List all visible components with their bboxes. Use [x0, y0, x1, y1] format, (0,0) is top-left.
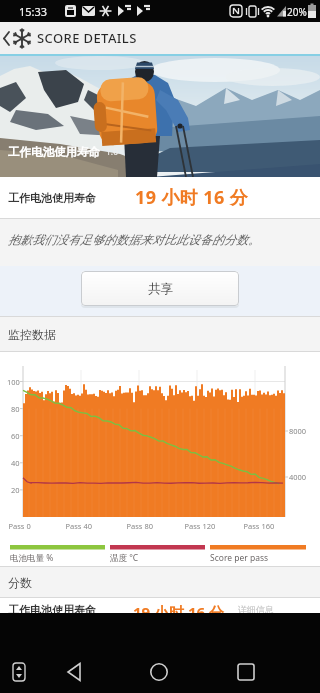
staticText: 15:33 — [19, 4, 48, 19]
staticText: 工作电池使用寿命 — [8, 191, 96, 205]
staticText: 20% — [287, 5, 307, 19]
button[interactable]: 共享 — [81, 271, 239, 306]
button[interactable] — [64, 661, 86, 683]
button[interactable] — [8, 661, 30, 683]
staticText: 19 小时 16 分 — [135, 185, 249, 210]
button[interactable]: SCORE DETAILS — [0, 22, 320, 54]
staticText: 19 小时 16 分 — [133, 602, 225, 617]
staticText: 分数 — [8, 575, 32, 590]
staticText: 抱歉我们没有足够的数据来对比此设备的分数。 — [8, 232, 260, 247]
button[interactable]: 工作电池使用寿命 — [0, 598, 320, 613]
button[interactable] — [148, 661, 170, 683]
button[interactable] — [235, 661, 257, 683]
staticText: 工作电池使用寿命 — [8, 145, 100, 159]
staticText: SCORE DETAILS — [37, 29, 137, 47]
staticText: 详细信息 — [238, 604, 274, 615]
staticText: 监控数据 — [8, 327, 56, 342]
staticText: 共享 — [148, 281, 173, 297]
staticText: 1.0 — [106, 146, 119, 158]
staticText: 工作电池使用寿命 — [8, 603, 96, 617]
button[interactable]: 工作电池使用寿命 — [0, 177, 320, 218]
